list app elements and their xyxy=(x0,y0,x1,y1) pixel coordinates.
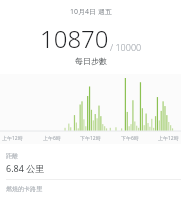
staticText: 下午6時 xyxy=(121,135,139,142)
staticText: 10870 xyxy=(40,22,109,55)
staticText: 燃燒的卡路里 xyxy=(6,185,42,193)
staticText: 每日步數 xyxy=(75,56,107,66)
staticText: / 10000 xyxy=(110,41,142,53)
staticText: 10月4日 週五 xyxy=(70,7,112,17)
button[interactable]: 距離 xyxy=(0,147,181,179)
button[interactable]: 燃燒的卡路里 xyxy=(0,180,181,200)
button[interactable]: 10月4日 週五 xyxy=(0,7,181,17)
staticText: 上午12時 xyxy=(2,135,23,142)
staticText: 6.84 公里 xyxy=(6,162,45,174)
staticText: 上午12時 xyxy=(158,135,179,142)
staticText: 下午12時 xyxy=(80,135,101,142)
staticText: 距離 xyxy=(6,152,18,160)
staticText: 上午6時 xyxy=(43,135,61,142)
button[interactable]: 上午12時 xyxy=(0,74,181,144)
